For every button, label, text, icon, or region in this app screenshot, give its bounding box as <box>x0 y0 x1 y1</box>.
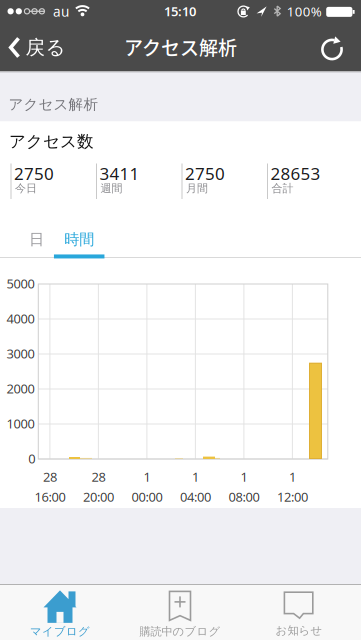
staticText: 2750 <box>14 162 54 185</box>
staticText: 3000 <box>6 345 34 362</box>
staticText: 購読中のブログ <box>139 624 220 639</box>
button[interactable]: 日 <box>15 226 58 253</box>
button[interactable]: 更新 <box>317 33 347 63</box>
button[interactable]: 購読中のブログ <box>121 588 239 640</box>
staticText: 日 <box>29 230 44 249</box>
staticText: 28 <box>91 468 105 486</box>
staticText: 1000 <box>6 415 34 432</box>
staticText: 12:00 <box>277 488 308 505</box>
button[interactable]: マイブログ <box>1 588 119 640</box>
staticText: 週間 <box>100 181 122 195</box>
staticText: 08:00 <box>228 488 259 505</box>
staticText: 5000 <box>6 275 34 292</box>
staticText: 1 <box>240 468 247 486</box>
staticText: 00:00 <box>131 488 162 505</box>
staticText: 今日 <box>15 181 37 195</box>
staticText: 戻る <box>25 35 65 60</box>
staticText: 04:00 <box>180 488 211 505</box>
staticText: アクセス解析 <box>124 33 237 61</box>
staticText: 20:00 <box>83 488 114 505</box>
staticText: 2000 <box>6 380 34 397</box>
staticText: 0 <box>28 450 35 467</box>
button[interactable]: 戻る <box>5 30 69 64</box>
staticText: 3411 <box>99 162 139 185</box>
staticText: 28653 <box>270 162 320 185</box>
staticText: 16:00 <box>34 488 65 505</box>
staticText: 15:10 <box>164 2 196 20</box>
staticText: 月間 <box>186 181 208 195</box>
button[interactable]: 時間 <box>54 228 104 258</box>
staticText: 4000 <box>6 310 34 327</box>
staticText: 1 <box>192 468 199 486</box>
staticText: マイブログ <box>30 624 90 639</box>
staticText: au <box>53 2 69 21</box>
staticText: アクセス数 <box>9 131 94 152</box>
button[interactable]: お知らせ <box>240 588 358 640</box>
staticText: アクセス解析 <box>8 95 98 114</box>
staticText: 28 <box>43 468 57 486</box>
staticText: 1 <box>289 468 296 486</box>
staticText: 100% <box>287 2 322 20</box>
staticText: 時間 <box>64 230 94 249</box>
staticText: お知らせ <box>275 623 322 638</box>
staticText: 合計 <box>271 181 293 195</box>
staticText: 1 <box>143 468 150 486</box>
staticText: 2750 <box>185 162 225 185</box>
